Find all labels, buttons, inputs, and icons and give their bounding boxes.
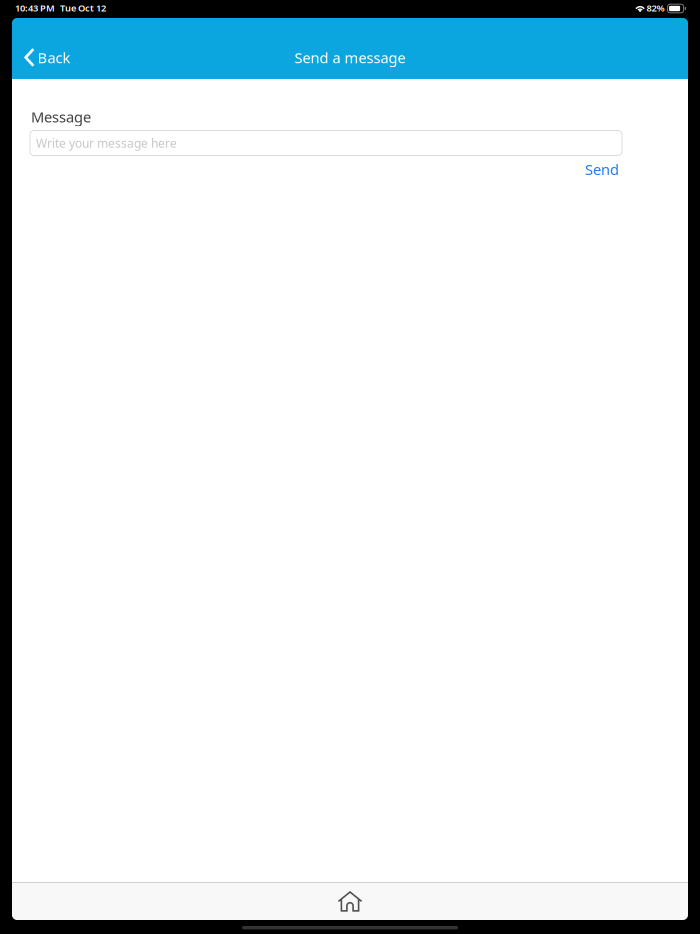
- button[interactable]: Write your message here: [30, 130, 622, 155]
- button[interactable]: Send: [577, 155, 627, 183]
- staticText: Back: [37, 48, 70, 67]
- button[interactable]: Home: [323, 883, 377, 920]
- staticText: Send: [585, 159, 619, 179]
- staticText: Tue Oct 12: [60, 2, 106, 14]
- staticText: 10:43 PM: [15, 2, 55, 14]
- staticText: Write your message here: [36, 135, 177, 151]
- staticText: Message: [31, 107, 91, 126]
- button[interactable]: Back: [12, 36, 82, 79]
- staticText: 82%: [647, 2, 665, 14]
- staticText: Send a message: [294, 48, 405, 67]
